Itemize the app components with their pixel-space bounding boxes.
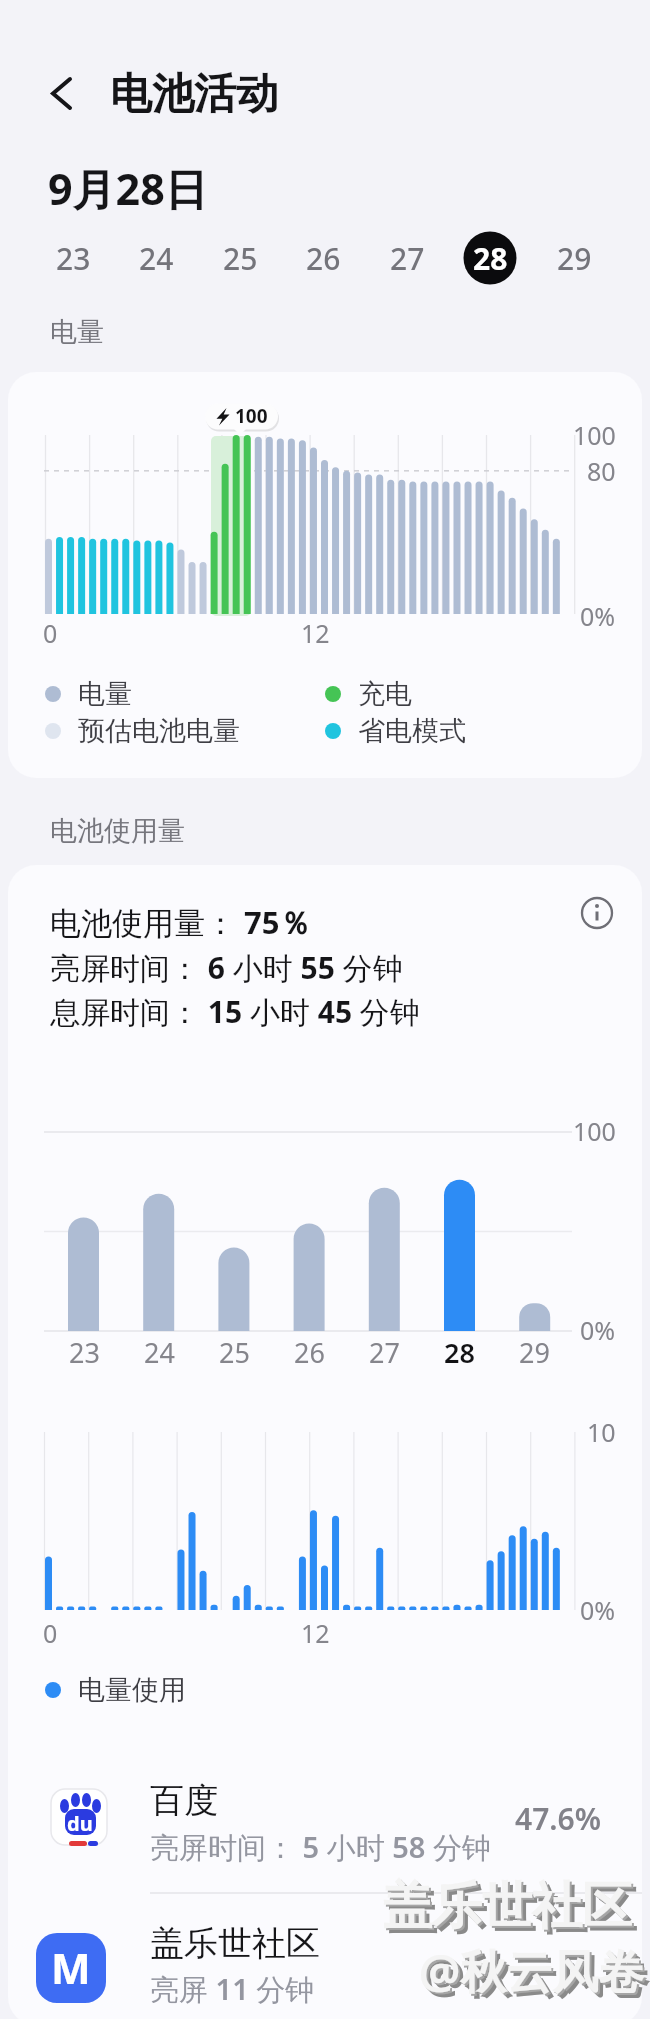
- staticText: 29: [557, 238, 592, 279]
- staticText: 26: [306, 238, 341, 279]
- staticText: 电量使用: [78, 1673, 186, 1707]
- button[interactable]: [43, 228, 103, 288]
- staticText: 盖乐世社区: [150, 1922, 320, 1965]
- staticText: 电池使用量： 75％: [50, 901, 311, 943]
- staticText: 47.6%: [515, 1798, 602, 1839]
- staticText: 盖乐世社区: [382, 1875, 632, 1938]
- staticText: 电量: [50, 315, 104, 349]
- button[interactable]: [460, 228, 520, 288]
- staticText: 9月28日: [48, 159, 208, 218]
- staticText: 28: [473, 238, 508, 279]
- staticText: 12: [301, 616, 330, 650]
- staticText: 80: [587, 454, 616, 488]
- button[interactable]: [126, 228, 186, 288]
- staticText: 电池活动: [110, 68, 278, 121]
- staticText: 29: [519, 1334, 550, 1371]
- staticText: M: [51, 1939, 91, 1996]
- staticText: 25: [219, 1334, 250, 1371]
- staticText: 省电模式: [358, 714, 466, 748]
- button[interactable]: [377, 228, 437, 288]
- staticText: 0: [43, 1616, 58, 1650]
- staticText: 28: [444, 1334, 475, 1371]
- staticText: 25: [223, 238, 258, 279]
- staticText: 27: [390, 238, 425, 279]
- staticText: 亮屏时间： 6 小时 55 分钟: [50, 947, 403, 988]
- staticText: 27: [369, 1334, 400, 1371]
- staticText: 亮屏 11 分钟: [150, 1969, 315, 2009]
- staticText: 0%: [580, 1313, 616, 1347]
- staticText: 0%: [580, 1593, 616, 1627]
- staticText: @秋云风卷: [421, 1941, 647, 2004]
- button[interactable]: [575, 891, 619, 935]
- staticText: 26: [294, 1334, 325, 1371]
- staticText: 10: [587, 1415, 616, 1449]
- staticText: 23: [56, 238, 91, 279]
- staticText: 盖乐世社区: [387, 1880, 637, 1943]
- staticText: 12: [301, 1616, 330, 1650]
- staticText: @秋云风卷: [419, 1939, 645, 2002]
- button[interactable]: [210, 228, 270, 288]
- staticText: 0: [43, 616, 58, 650]
- staticText: 电量: [78, 677, 132, 711]
- button[interactable]: [38, 66, 94, 122]
- staticText: du: [67, 1810, 93, 1837]
- staticText: 息屏时间： 15 小时 45 分钟: [50, 991, 420, 1032]
- staticText: 100: [573, 1114, 616, 1148]
- staticText: 百度: [150, 1779, 218, 1822]
- staticText: 盖乐世社区: [384, 1877, 634, 1940]
- staticText: 24: [139, 238, 174, 279]
- staticText: 100: [235, 403, 268, 429]
- staticText: 0%: [580, 599, 616, 633]
- staticText: 充电: [358, 677, 412, 711]
- staticText: 预估电池电量: [78, 714, 240, 748]
- staticText: 24: [144, 1334, 175, 1371]
- staticText: 100: [573, 418, 616, 452]
- staticText: 亮屏时间： 5 小时 58 分钟: [150, 1827, 491, 1867]
- button[interactable]: [293, 228, 353, 288]
- staticText: @秋云风卷: [424, 1944, 650, 2007]
- staticText: 23: [69, 1334, 100, 1371]
- button[interactable]: [8, 1912, 642, 2019]
- button[interactable]: [8, 1772, 642, 1888]
- staticText: 电池使用量: [50, 814, 185, 848]
- button[interactable]: [544, 228, 604, 288]
